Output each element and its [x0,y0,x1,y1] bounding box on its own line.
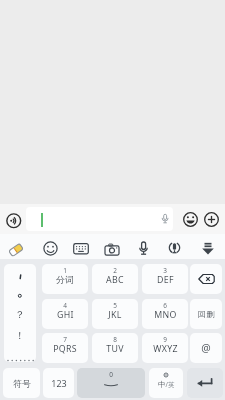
button[interactable] [8,242,24,258]
button[interactable]: 2 [92,264,138,294]
button[interactable] [183,212,198,227]
staticText: DEF [157,274,174,286]
staticText: 分词 [56,274,74,285]
staticText: 5 [113,301,117,310]
button[interactable]: 7 [42,333,88,363]
button[interactable]: ？ [4,264,36,362]
button[interactable] [136,241,151,257]
button[interactable] [6,213,22,229]
button[interactable] [167,241,182,256]
button[interactable] [104,243,120,256]
button[interactable] [43,241,58,256]
staticText: 回删 [197,309,215,319]
button[interactable]: 8 [92,333,138,363]
staticText: 1 [63,266,67,275]
staticText: 4 [63,301,67,310]
staticText: JKL [108,309,122,321]
button[interactable]: @ [190,333,222,363]
staticText: GHI [57,309,74,321]
staticText: MNO [154,309,177,321]
staticText: 符号 [13,378,31,389]
button[interactable]: 6 [142,299,188,329]
staticText: 3 [163,266,167,275]
button[interactable] [187,368,223,398]
staticText: 8 [113,335,117,344]
staticText: 123 [51,377,67,389]
staticText: ABC [106,274,124,286]
button[interactable] [190,264,222,294]
button[interactable]: 5 [92,299,138,329]
button[interactable] [204,212,219,227]
staticText: 2 [113,266,117,275]
button[interactable]: 1 [42,264,88,294]
staticText: @ [201,341,211,355]
button[interactable] [201,242,215,256]
staticText: PQRS [53,343,77,355]
button[interactable]: 4 [42,299,88,329]
staticText: TUV [106,343,124,355]
button[interactable] [73,243,89,255]
button[interactable]: 0 [77,368,145,398]
button[interactable]: 中/英 [149,368,183,398]
staticText: ？ [15,308,25,321]
staticText: 7 [63,335,67,344]
button[interactable]: 123 [43,368,74,398]
button[interactable]: 3 [142,264,188,294]
button[interactable]: 符号 [3,368,40,398]
staticText: 中/英 [158,380,175,389]
button[interactable] [26,207,173,231]
staticText: ！ [15,329,25,342]
staticText: WXYZ [153,343,178,355]
button[interactable]: 9 [142,333,188,363]
button[interactable]: 回删 [190,299,222,329]
staticText: 0 [109,370,113,379]
staticText: 6 [163,301,167,310]
staticText: 9 [163,335,167,344]
